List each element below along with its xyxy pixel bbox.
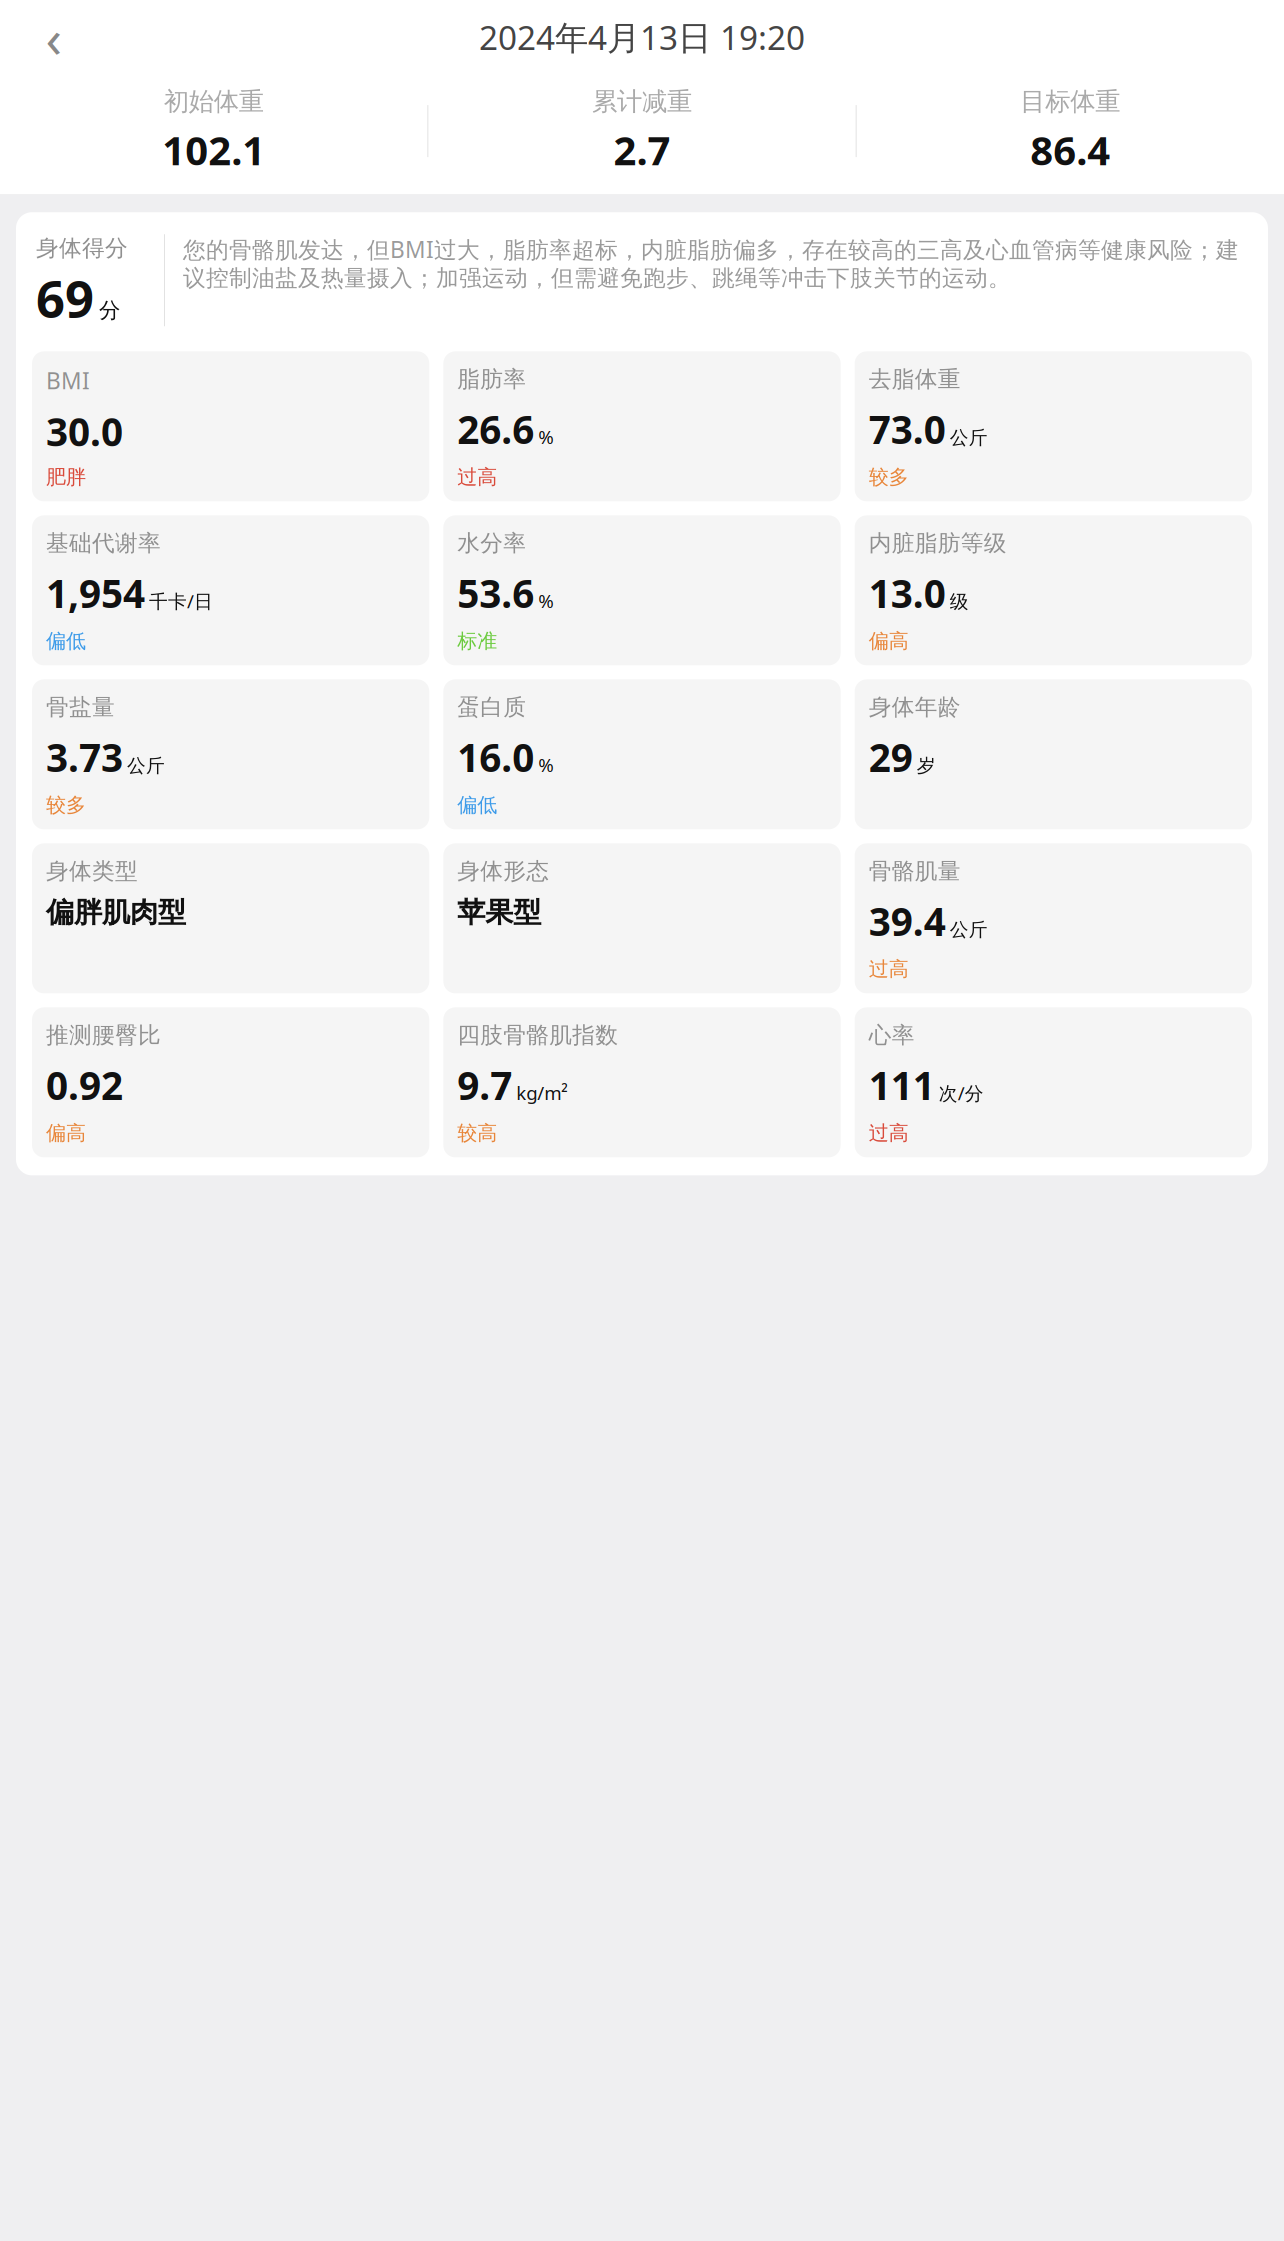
staticText: 累计减重 bbox=[592, 86, 692, 117]
staticText: 偏低 bbox=[46, 629, 86, 653]
staticText: 13.0 bbox=[869, 567, 946, 618]
button[interactable]: 身体类型 bbox=[32, 843, 429, 993]
button[interactable]: 四肢骨骼肌指数 bbox=[443, 1007, 841, 1157]
staticText: 蛋白质 bbox=[457, 693, 526, 721]
staticText: 目标体重 bbox=[1020, 86, 1120, 117]
staticText: 3.73 bbox=[46, 731, 123, 782]
button[interactable]: 骨骼肌量 bbox=[855, 843, 1252, 993]
button[interactable]: 内脏脂肪等级 bbox=[855, 515, 1252, 665]
button[interactable]: 身体形态 bbox=[443, 843, 841, 993]
staticText: 公斤 bbox=[127, 754, 165, 777]
staticText: 73.0 bbox=[869, 403, 946, 454]
staticText: 过高 bbox=[457, 465, 497, 489]
staticText: 较多 bbox=[46, 793, 86, 817]
staticText: 分 bbox=[99, 297, 120, 323]
button[interactable]: 返回 bbox=[26, 9, 82, 65]
staticText: 偏高 bbox=[46, 1121, 86, 1145]
staticText: 级 bbox=[950, 590, 969, 613]
staticText: 16.0 bbox=[457, 731, 534, 782]
staticText: 102.1 bbox=[162, 123, 265, 176]
staticText: 过高 bbox=[869, 1121, 909, 1145]
staticText: 肥胖 bbox=[46, 465, 86, 489]
staticText: 骨盐量 bbox=[46, 693, 115, 721]
button[interactable]: 心率 bbox=[855, 1007, 1252, 1157]
staticText: 骨骼肌量 bbox=[869, 857, 961, 885]
staticText: 身体得分 bbox=[36, 234, 128, 262]
staticText: 偏高 bbox=[869, 629, 909, 653]
staticText: 69 bbox=[36, 264, 94, 331]
staticText: 岁 bbox=[917, 754, 936, 777]
staticText: ‹ bbox=[45, 2, 62, 72]
staticText: 苹果型 bbox=[457, 895, 541, 930]
staticText: 2024年4月13日 19:20 bbox=[479, 15, 805, 59]
staticText: 过高 bbox=[869, 957, 909, 981]
staticText: 53.6 bbox=[457, 567, 534, 618]
staticText: BMI bbox=[46, 365, 90, 395]
staticText: 去脂体重 bbox=[869, 365, 961, 393]
staticText: 您的骨骼肌发达，但BMI过大，脂肪率超标，内脏脂肪偏多，存在较高的三高及心血管病… bbox=[183, 234, 1239, 292]
button[interactable]: 推测腰臀比 bbox=[32, 1007, 429, 1157]
button[interactable]: BMI bbox=[32, 351, 429, 501]
staticText: 公斤 bbox=[950, 426, 988, 449]
staticText: % bbox=[538, 588, 554, 613]
staticText: 86.4 bbox=[1030, 123, 1110, 176]
staticText: 标准 bbox=[457, 629, 497, 653]
staticText: 较多 bbox=[869, 465, 909, 489]
staticText: 偏低 bbox=[457, 793, 497, 817]
staticText: 基础代谢率 bbox=[46, 529, 161, 557]
staticText: 2.7 bbox=[613, 123, 670, 176]
staticText: 身体类型 bbox=[46, 857, 138, 885]
staticText: 较高 bbox=[457, 1121, 497, 1145]
staticText: 111 bbox=[869, 1059, 935, 1110]
button[interactable]: 去脂体重 bbox=[855, 351, 1252, 501]
staticText: 0.92 bbox=[46, 1059, 123, 1110]
staticText: 26.6 bbox=[457, 403, 534, 454]
staticText: 29 bbox=[869, 731, 913, 782]
staticText: 1,954 bbox=[46, 567, 145, 618]
staticText: 推测腰臀比 bbox=[46, 1021, 161, 1049]
staticText: 内脏脂肪等级 bbox=[869, 529, 1007, 557]
staticText: 公斤 bbox=[950, 918, 988, 941]
staticText: 身体年龄 bbox=[869, 693, 961, 721]
button[interactable]: 骨盐量 bbox=[32, 679, 429, 829]
staticText: 偏胖肌肉型 bbox=[46, 895, 186, 930]
staticText: 39.4 bbox=[869, 895, 946, 946]
staticText: 30.0 bbox=[46, 405, 123, 457]
staticText: 9.7 bbox=[457, 1059, 512, 1110]
button[interactable]: 水分率 bbox=[443, 515, 841, 665]
staticText: % bbox=[538, 752, 554, 777]
staticText: 初始体重 bbox=[164, 86, 264, 117]
staticText: kg/m² bbox=[516, 1080, 568, 1105]
staticText: 身体形态 bbox=[457, 857, 549, 885]
staticText: 水分率 bbox=[457, 529, 526, 557]
staticText: 脂肪率 bbox=[457, 365, 526, 393]
staticText: 四肢骨骼肌指数 bbox=[457, 1021, 618, 1049]
button[interactable]: 基础代谢率 bbox=[32, 515, 429, 665]
button[interactable]: 身体年龄 bbox=[855, 679, 1252, 829]
staticText: 次/分 bbox=[939, 1080, 984, 1105]
staticText: 心率 bbox=[869, 1021, 915, 1049]
staticText: 千卡/日 bbox=[149, 588, 213, 613]
button[interactable]: 脂肪率 bbox=[443, 351, 841, 501]
button[interactable]: 蛋白质 bbox=[443, 679, 841, 829]
staticText: % bbox=[538, 424, 554, 449]
